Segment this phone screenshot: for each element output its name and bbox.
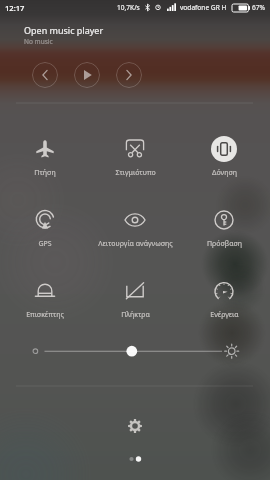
staticText: Πρόσβαση xyxy=(207,239,242,249)
button[interactable]: Πτήση xyxy=(0,136,90,178)
staticText: Δόνηση xyxy=(212,168,237,178)
button[interactable]: Πλήκτρα xyxy=(90,278,180,320)
button[interactable]: Next xyxy=(116,62,142,88)
staticText: Στιγμιότυπο xyxy=(115,168,156,178)
button[interactable]: GPS xyxy=(0,207,90,249)
staticText: Open music player xyxy=(24,24,104,36)
button[interactable]: Brightness xyxy=(0,336,270,366)
staticText: Πλήκτρα xyxy=(121,310,150,320)
staticText: GPS xyxy=(38,239,52,249)
staticText: No music xyxy=(24,37,53,46)
staticText: 10,7K/s xyxy=(117,3,140,12)
staticText: 67% xyxy=(252,3,266,12)
button[interactable]: Στιγμιότυπο xyxy=(90,136,180,178)
staticText: vodafone GR H xyxy=(180,3,227,12)
staticText: 12:17 xyxy=(5,3,25,13)
button[interactable]: Ενέργεια xyxy=(179,278,269,320)
button[interactable]: Previous xyxy=(32,62,58,88)
button[interactable]: Πρόσβαση xyxy=(179,207,269,249)
staticText: Λειτουργία ανάγνωσης xyxy=(98,239,173,249)
staticText: Πτήση xyxy=(34,168,56,178)
button[interactable]: Play xyxy=(74,62,100,88)
staticText: Επισκέπτης xyxy=(26,310,64,320)
button[interactable]: Επισκέπτης xyxy=(0,278,90,320)
staticText: Ενέργεια xyxy=(210,310,239,320)
button[interactable]: Δόνηση xyxy=(179,136,269,178)
button[interactable]: Λειτουργία ανάγνωσης xyxy=(90,207,180,249)
button[interactable]: Settings xyxy=(120,411,150,441)
